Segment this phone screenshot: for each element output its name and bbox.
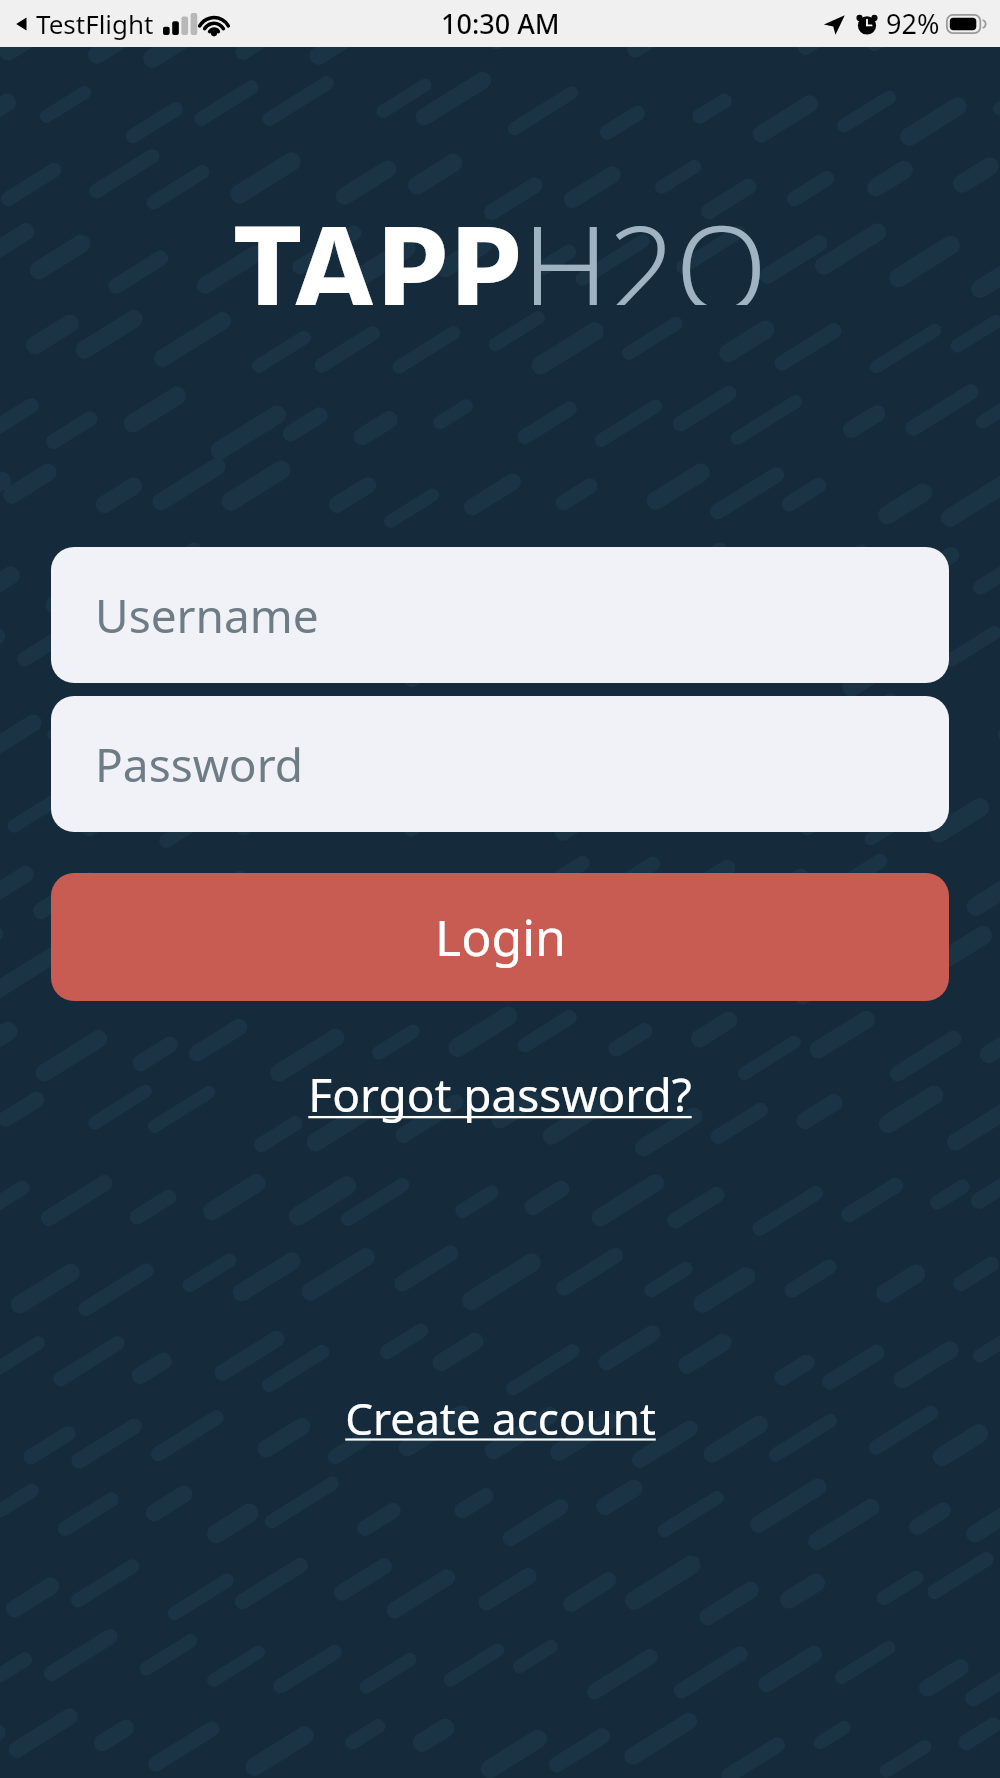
button[interactable]: Create account bbox=[329, 1382, 672, 1454]
button[interactable]: Login bbox=[51, 873, 949, 1001]
staticText: Forgot password? bbox=[308, 1063, 692, 1126]
staticText: 10:30 AM bbox=[441, 5, 560, 42]
staticText: Login bbox=[435, 903, 566, 971]
staticText: Password bbox=[95, 733, 304, 796]
staticText: TAPPH2O bbox=[233, 185, 767, 305]
button[interactable]: Username bbox=[51, 547, 949, 683]
staticText: TestFlight bbox=[36, 6, 154, 41]
button[interactable]: Password bbox=[51, 696, 949, 832]
staticText: Username bbox=[95, 584, 319, 647]
button[interactable]: Forgot password? bbox=[292, 1057, 708, 1132]
staticText: 92% bbox=[886, 5, 940, 42]
staticText: Create account bbox=[345, 1388, 656, 1448]
